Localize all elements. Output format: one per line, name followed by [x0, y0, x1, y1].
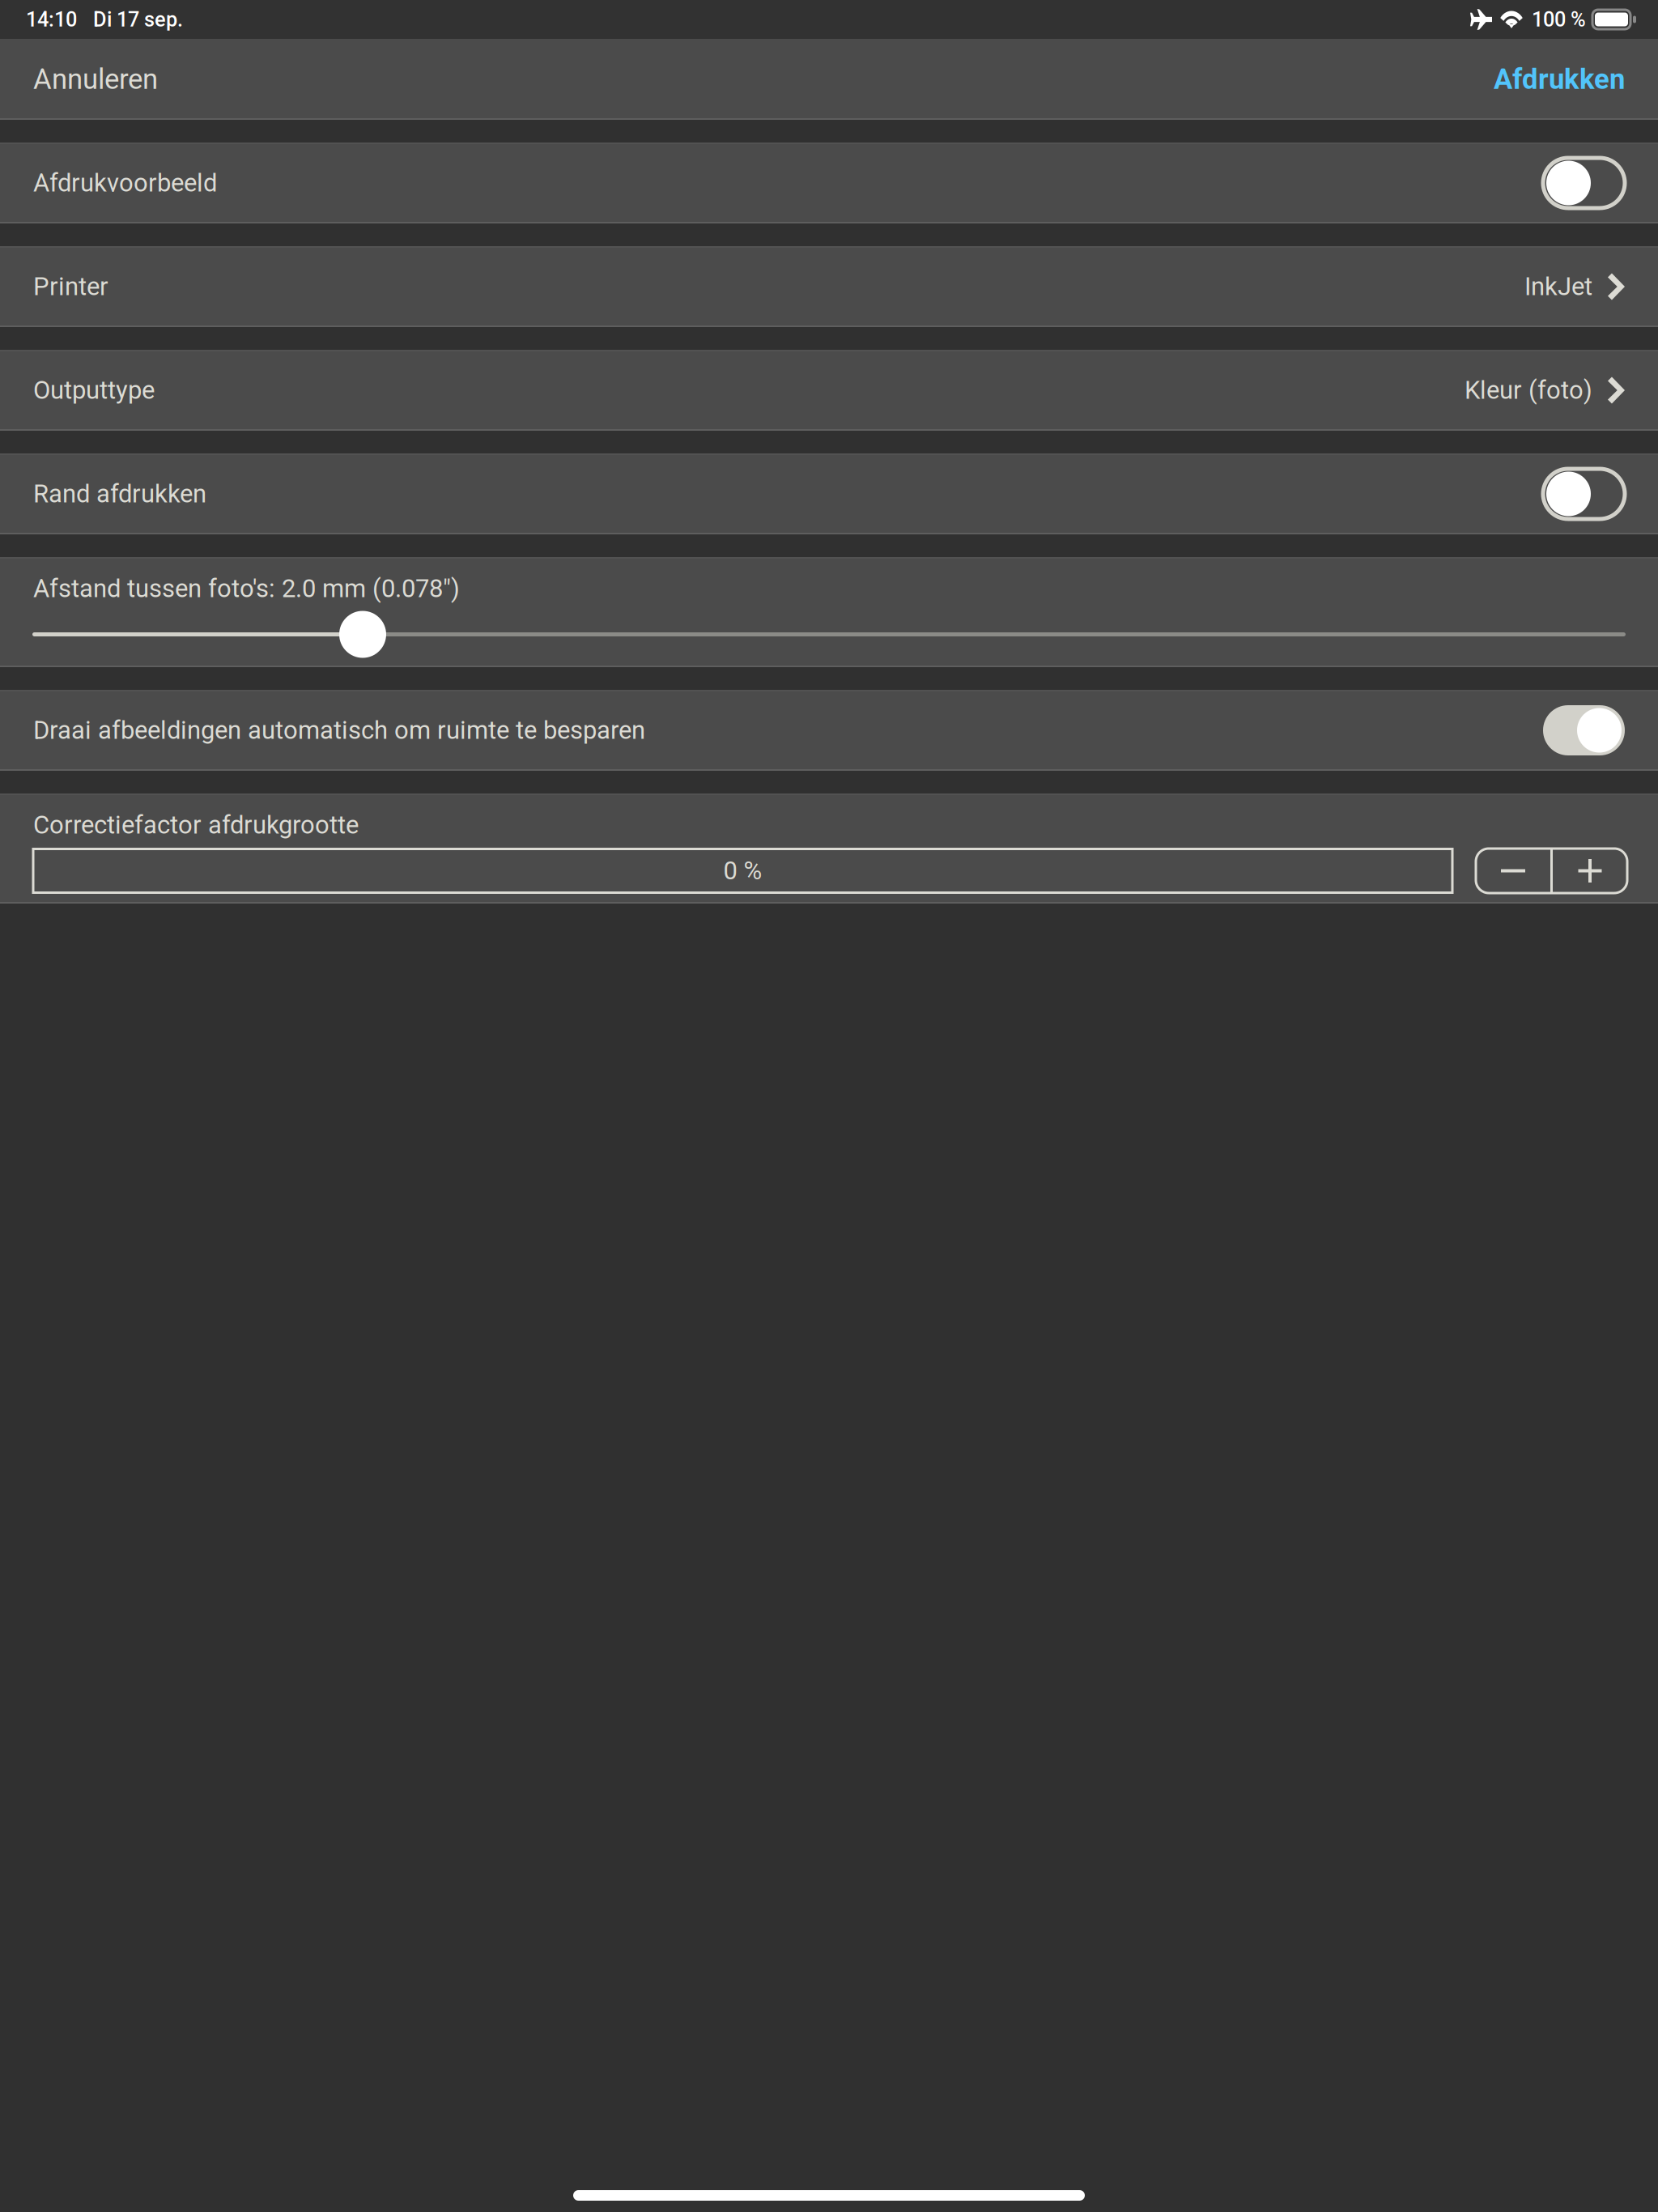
button[interactable]: Afdrukken [1494, 63, 1625, 96]
staticText: InkJet [1524, 272, 1592, 301]
staticText: Afdrukvoorbeeld [33, 168, 217, 198]
button[interactable]: 0 % [33, 849, 1452, 893]
staticText: 100 % [1532, 7, 1586, 31]
staticText: 0 % [723, 856, 762, 885]
staticText: Kleur (foto) [1465, 376, 1592, 405]
staticText: Draai afbeeldingen automatisch om ruimte… [33, 716, 645, 745]
staticText: Rand afdrukken [33, 479, 206, 509]
staticText: Annuleren [33, 63, 158, 96]
button[interactable]: Verlagen [1476, 849, 1550, 893]
staticText: Afstand tussen foto's: 2.0 mm (0.078") [33, 574, 460, 603]
button[interactable]: Annuleren [33, 63, 158, 96]
button[interactable]: Draai afbeeldingen automatisch om ruimte… [0, 690, 1658, 771]
staticText: Afdrukken [1494, 63, 1625, 96]
button[interactable]: Printer [0, 246, 1658, 327]
staticText: Di 17 sep. [93, 7, 183, 31]
staticText: Printer [33, 272, 108, 301]
button[interactable]: Rand afdrukken [0, 453, 1658, 534]
button[interactable]: Afdrukvoorbeeld [0, 143, 1658, 223]
staticText: 14:10 [26, 7, 77, 31]
button[interactable]: Outputtype [0, 350, 1658, 431]
staticText: Correctiefactor afdrukgrootte [33, 810, 359, 840]
staticText: Outputtype [33, 376, 155, 405]
button[interactable]: Verhogen [1553, 849, 1627, 893]
